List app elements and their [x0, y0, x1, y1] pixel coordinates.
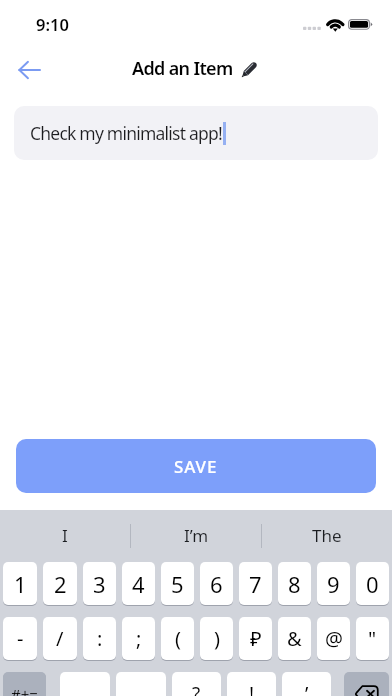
button[interactable]: Back [8, 48, 52, 92]
button[interactable]: 4 [122, 562, 155, 605]
button[interactable]: 9 [317, 562, 350, 605]
staticText: - [17, 625, 24, 652]
button[interactable]: 3 [83, 562, 116, 605]
button[interactable]: SAVE [16, 439, 376, 493]
staticText: 2 [54, 569, 67, 599]
button[interactable]: 8 [278, 562, 311, 605]
button[interactable]: ! [227, 672, 276, 696]
button[interactable]: 1 [3, 562, 37, 605]
staticText: & [287, 625, 302, 652]
button[interactable]: 6 [200, 562, 233, 605]
button[interactable]: & [278, 617, 311, 660]
staticText: ₽ [250, 625, 262, 652]
button[interactable]: " [356, 617, 389, 660]
staticText: 3 [93, 569, 106, 599]
staticText: 7 [249, 569, 262, 599]
button[interactable]: . [60, 672, 110, 696]
staticText: ’ [305, 681, 309, 696]
staticText: #+= [11, 684, 38, 696]
button[interactable]: - [3, 617, 37, 660]
staticText: 1 [14, 569, 27, 599]
staticText: ) [214, 625, 220, 652]
staticText: @ [325, 625, 343, 652]
button[interactable]: Backspace [344, 672, 389, 696]
button[interactable]: #+= [3, 672, 46, 696]
button[interactable]: 7 [239, 562, 272, 605]
staticText: 9:10 [36, 13, 69, 35]
button[interactable]: 2 [43, 562, 77, 605]
staticText: " [368, 625, 377, 652]
button[interactable]: @ [317, 617, 350, 660]
button[interactable]: I’m [131, 510, 261, 562]
button[interactable]: I [0, 510, 130, 562]
staticText: I’m [184, 524, 209, 547]
staticText: ( [175, 625, 181, 652]
button[interactable]: ? [172, 672, 221, 696]
staticText: The [312, 524, 342, 547]
staticText: : [97, 625, 103, 652]
staticText: Add an Item [132, 56, 233, 81]
staticText: Check my minimalist app! [30, 121, 222, 145]
staticText: 5 [171, 569, 184, 599]
button[interactable]: : [83, 617, 116, 660]
staticText: 8 [288, 569, 301, 599]
button[interactable]: ₽ [239, 617, 272, 660]
staticText: I [62, 524, 68, 547]
staticText: ! [249, 681, 255, 696]
button[interactable]: ; [122, 617, 155, 660]
staticText: 6 [210, 569, 223, 599]
button[interactable]: / [43, 617, 77, 660]
button[interactable]: 0 [356, 562, 389, 605]
button[interactable]: ( [161, 617, 194, 660]
button[interactable]: , [116, 672, 166, 696]
staticText: SAVE [174, 455, 218, 478]
staticText: / [56, 625, 64, 652]
button[interactable]: 5 [161, 562, 194, 605]
button[interactable]: Check my minimalist app! [14, 106, 378, 160]
staticText: 0 [366, 569, 379, 599]
button[interactable]: ’ [282, 672, 331, 696]
button[interactable]: The [262, 510, 392, 562]
staticText: ? [192, 681, 201, 696]
button[interactable]: ) [200, 617, 233, 660]
staticText: 4 [132, 569, 145, 599]
staticText: ; [136, 625, 142, 652]
staticText: 9 [327, 569, 340, 599]
